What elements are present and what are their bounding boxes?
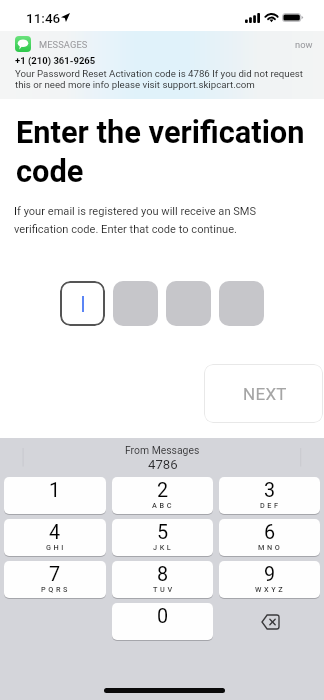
staticText: 0 [157,605,169,628]
button[interactable]: 3 [219,477,320,514]
staticText: MNO [258,543,283,552]
button[interactable]: 5 [112,519,213,556]
staticText: TUV [153,585,175,594]
staticText: From Messages [125,444,200,456]
button[interactable] [60,281,105,326]
staticText: MESSAGES [39,39,88,50]
staticText: NEXT [243,384,287,404]
button[interactable]: 1 [4,477,106,514]
button[interactable]: 8 [112,561,213,598]
staticText: 4786 [148,457,178,472]
button[interactable]: 4 [4,519,106,556]
staticText: Your Password Reset Activation code is 4… [15,68,313,90]
staticText: JKL [153,543,174,552]
staticText: 11:46 [26,10,61,26]
staticText: +1 (210) 361-9265 [15,55,96,66]
staticText: 9 [264,563,276,586]
button[interactable]: Delete [219,603,320,640]
staticText: 8 [157,563,169,586]
staticText: 5 [157,521,169,544]
staticText: Enter the verification code [16,114,316,189]
button[interactable] [113,281,158,326]
button[interactable]: 0 [112,603,213,640]
staticText: WXYZ [255,585,286,594]
staticText: 3 [264,479,276,502]
staticText: 7 [49,563,61,586]
staticText: 1 [49,479,61,502]
staticText: PQRS [41,585,71,594]
button[interactable] [219,281,264,326]
staticText: 2 [157,479,169,502]
button[interactable] [166,281,211,326]
staticText: now [295,39,313,50]
button[interactable]: 7 [4,561,106,598]
button[interactable]: NEXT [204,364,323,423]
staticText: 6 [264,521,276,544]
staticText: ABC [152,501,175,510]
button[interactable]: 2 [112,477,213,514]
staticText: If your email is registered you will rec… [14,205,268,236]
staticText: GHI [46,543,67,552]
staticText: 4 [49,521,61,544]
button[interactable]: 9 [219,561,320,598]
button[interactable]: 6 [219,519,320,556]
staticText: DEF [260,501,281,510]
